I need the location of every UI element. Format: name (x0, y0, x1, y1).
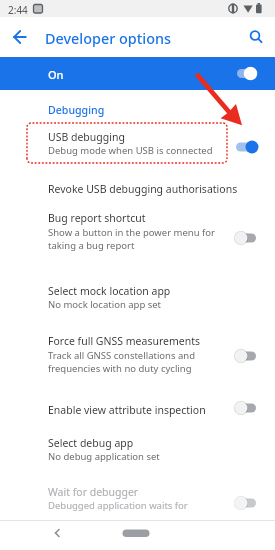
staticText: Force full GNSS measurements (48, 334, 200, 348)
staticText: Enable view attribute inspection (48, 403, 206, 417)
button[interactable] (232, 139, 262, 155)
staticText: No debug application set (48, 450, 160, 463)
button[interactable] (0, 57, 275, 90)
button[interactable] (232, 348, 262, 364)
button[interactable] (0, 274, 275, 322)
button[interactable] (232, 400, 262, 416)
staticText: USB debugging (48, 130, 125, 144)
button[interactable] (0, 478, 275, 518)
button[interactable] (0, 396, 275, 426)
button[interactable] (0, 170, 275, 206)
staticText: Track all GNSS constellations and (48, 349, 196, 362)
staticText: Developer options (45, 29, 171, 49)
staticText: Wait for debugger (48, 485, 139, 499)
staticText: Revoke USB debugging authorisations (48, 182, 238, 196)
button[interactable] (0, 326, 275, 384)
staticText: 2:44 (8, 3, 28, 17)
button[interactable] (0, 206, 275, 258)
button[interactable] (232, 495, 262, 511)
staticText: taking a bug report (48, 239, 135, 252)
button[interactable] (46, 523, 68, 545)
staticText: No mock location app set (48, 298, 162, 311)
staticText: Select mock location app (48, 284, 171, 298)
staticText: Debugged application waits for (48, 499, 188, 512)
button[interactable] (0, 121, 275, 165)
button[interactable] (0, 430, 275, 472)
staticText: Bug report shortcut (48, 211, 146, 225)
button[interactable] (8, 25, 32, 49)
staticText: Select debug app (48, 436, 134, 450)
staticText: On (48, 67, 64, 82)
button[interactable] (118, 525, 154, 541)
staticText: Debug mode when USB is connected (48, 144, 213, 157)
staticText: Debugging (48, 103, 105, 117)
staticText: Show a button in the power menu for (48, 226, 215, 239)
button[interactable] (244, 25, 268, 49)
staticText: frequencies with no duty cycling (48, 362, 192, 375)
button[interactable] (232, 230, 262, 246)
